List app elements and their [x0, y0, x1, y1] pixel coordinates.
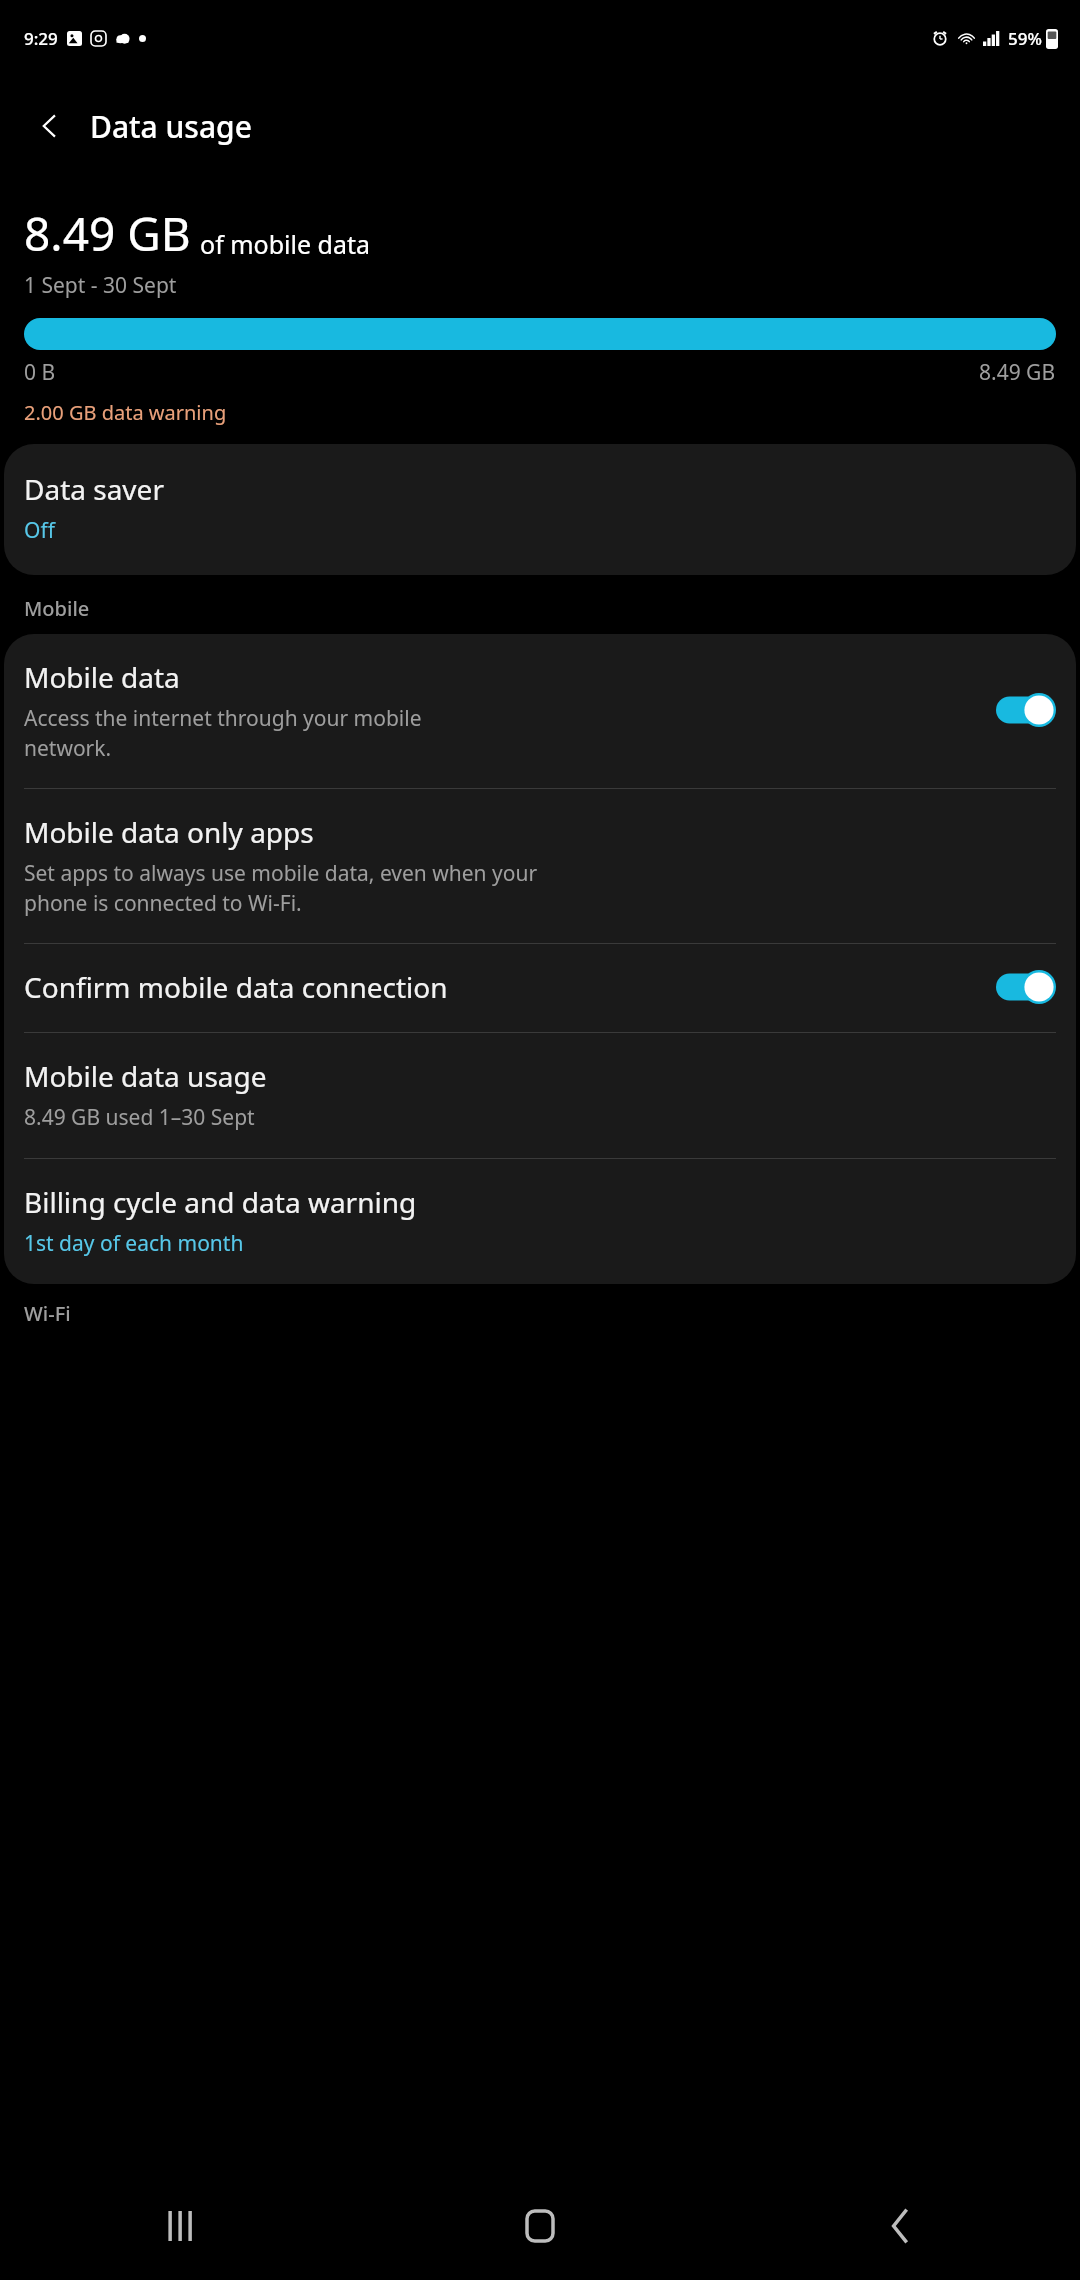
staticText: Mobile data usage [24, 1057, 267, 1095]
staticText: 1 Sept - 30 Sept [24, 271, 177, 300]
staticText: 1st day of each month [24, 1229, 244, 1258]
staticText: 2.00 GB data warning [24, 399, 227, 426]
button[interactable]: Mobile data [4, 634, 1076, 788]
button[interactable]: Billing cycle and data warning [4, 1159, 1076, 1284]
staticText: 59% [1008, 27, 1042, 50]
button[interactable]: Back [720, 2172, 1080, 2280]
staticText: of mobile data [200, 227, 371, 261]
staticText: Mobile data only apps [24, 813, 314, 851]
staticText: 8.49 GB [979, 358, 1056, 387]
button[interactable]: Toggle on [996, 693, 1056, 727]
staticText: Confirm mobile data connection [24, 968, 448, 1006]
staticText: Access the internet through your mobile … [24, 704, 422, 762]
button[interactable]: Confirm mobile data connection [4, 944, 1076, 1032]
staticText: Mobile data [24, 658, 180, 696]
staticText: Billing cycle and data warning [24, 1183, 417, 1221]
button[interactable]: Home [360, 2172, 720, 2280]
button[interactable]: Mobile data usage [4, 1033, 1076, 1158]
staticText: Set apps to always use mobile data, even… [24, 859, 538, 917]
button[interactable]: Data saver [4, 444, 1076, 575]
button[interactable]: Mobile data only apps [4, 789, 1076, 943]
staticText: Wi-Fi [24, 1300, 71, 1327]
staticText: Data usage [90, 106, 252, 147]
staticText: 8.49 GB used 1–30 Sept [24, 1103, 255, 1132]
staticText: Data saver [24, 470, 164, 508]
staticText: 9:29 [24, 27, 58, 50]
staticText: 8.49 GB [24, 202, 191, 265]
staticText: Off [24, 516, 55, 545]
button[interactable]: Back [22, 98, 78, 154]
button[interactable]: Toggle on [996, 970, 1056, 1004]
staticText: 0 B [24, 358, 56, 387]
button[interactable]: Recents [0, 2172, 360, 2280]
staticText: Mobile [24, 595, 90, 622]
